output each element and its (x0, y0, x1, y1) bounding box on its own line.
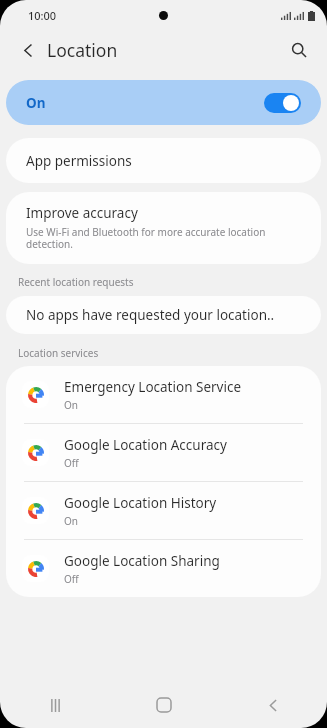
staticText: Google Location History (64, 494, 217, 512)
staticText: No apps have requested your location.. (26, 306, 275, 324)
staticText: Google Location Sharing (64, 552, 220, 570)
button[interactable]: Recent apps (34, 684, 76, 726)
staticText: Off (64, 572, 79, 586)
button[interactable]: Google Location Accuracy (6, 424, 321, 481)
staticText: Google Location Accuracy (64, 436, 227, 454)
staticText: Location (47, 38, 118, 62)
staticText: App permissions (26, 152, 132, 170)
button[interactable]: Improve accuracy (6, 192, 321, 264)
staticText: Off (64, 456, 79, 470)
button[interactable]: Google Location Sharing (6, 540, 321, 597)
button[interactable]: App permissions (6, 138, 321, 183)
staticText: On (64, 398, 78, 412)
button[interactable]: Home (143, 684, 185, 726)
button[interactable]: Back (252, 684, 294, 726)
button[interactable]: No apps have requested your location.. (6, 296, 321, 334)
staticText: Improve accuracy (26, 204, 138, 222)
button[interactable]: On (6, 80, 321, 125)
staticText: 10:00 (28, 8, 57, 23)
staticText: Use Wi-Fi and Bluetooth for more accurat… (26, 225, 307, 251)
staticText: Emergency Location Service (64, 378, 242, 396)
staticText: Location services (18, 346, 99, 360)
staticText: On (64, 514, 78, 528)
staticText: On (26, 94, 46, 112)
button[interactable]: Emergency Location Service (6, 366, 321, 423)
button[interactable]: Back (11, 33, 45, 67)
button[interactable]: Search (282, 33, 316, 67)
button[interactable]: Google Location History (6, 482, 321, 539)
staticText: Recent location requests (18, 275, 134, 289)
